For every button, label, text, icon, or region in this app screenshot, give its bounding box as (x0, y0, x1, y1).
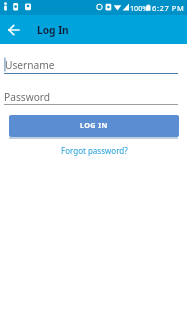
button[interactable]: Password (4, 87, 178, 106)
staticText: Password (4, 90, 51, 104)
button[interactable]: LOG IN (9, 115, 179, 137)
staticText: Username (5, 58, 55, 72)
staticText: Forgot password? (61, 145, 128, 156)
button[interactable]: Username (4, 56, 178, 75)
staticText: 100% (130, 3, 149, 13)
staticText: 6:27 PM (152, 3, 185, 13)
button[interactable]: Forgot password? (0, 144, 187, 157)
staticText: Log In (37, 23, 69, 37)
button[interactable] (4, 20, 24, 40)
staticText: LOG IN (80, 120, 108, 130)
